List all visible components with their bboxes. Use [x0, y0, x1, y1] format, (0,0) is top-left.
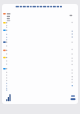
button[interactable]: Layer: [0, 0, 80, 114]
button[interactable]: Layer: [0, 0, 80, 114]
button[interactable]: Layer: [0, 0, 80, 114]
button[interactable]: Layer: [0, 0, 80, 114]
button[interactable]: Layer: [0, 0, 80, 114]
button[interactable]: Layer: [0, 0, 80, 114]
button[interactable]: Layer: [0, 0, 80, 114]
button[interactable]: Layer: [0, 0, 80, 114]
button[interactable]: Layer: [0, 0, 80, 114]
button[interactable]: Layer: [0, 0, 80, 114]
button[interactable]: Layer: [0, 0, 80, 114]
button[interactable]: Layer: [0, 0, 80, 114]
button[interactable]: Analytics: [0, 0, 80, 114]
button[interactable]: Layer: [0, 0, 80, 114]
button[interactable]: Layer: [0, 0, 80, 114]
button[interactable]: Layer: [0, 0, 80, 114]
button[interactable]: Layer: [0, 0, 80, 114]
button[interactable]: Layer: [0, 0, 80, 114]
button[interactable]: Layer: [0, 0, 80, 114]
button[interactable]: Menu: [0, 0, 80, 114]
button[interactable]: Account: [0, 0, 80, 114]
button[interactable]: Layer: [0, 0, 80, 114]
button[interactable]: Layer: [0, 0, 80, 114]
button[interactable]: Layer: [0, 0, 80, 114]
button[interactable]: Layer: [0, 0, 80, 114]
button[interactable]: Layer: [0, 0, 80, 114]
button[interactable]: Layer: [0, 0, 80, 114]
button[interactable]: Layer: [0, 0, 80, 114]
button[interactable]: Layer: [0, 0, 80, 114]
